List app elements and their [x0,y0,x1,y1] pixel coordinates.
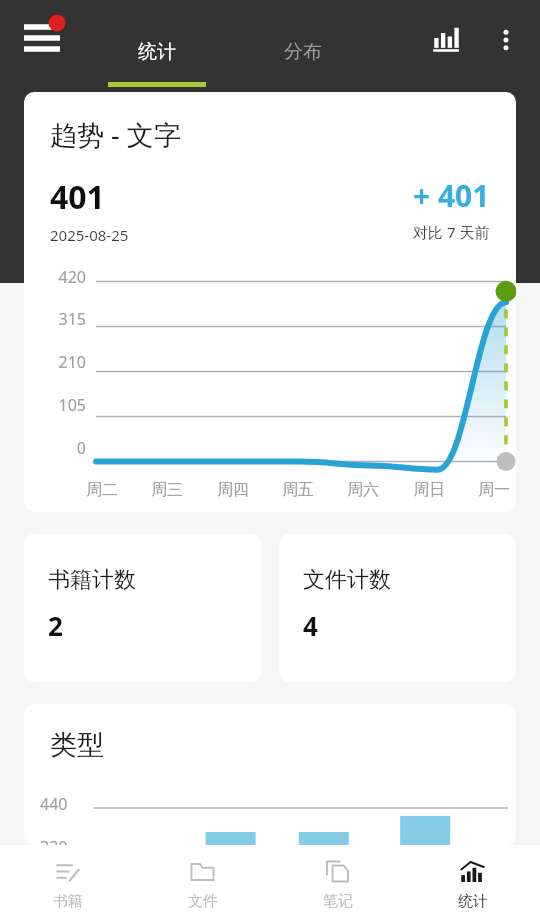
staticText: 分布 [284,40,322,64]
staticText: 对比 7 天前 [413,222,490,242]
staticText: 210 [24,351,86,373]
staticText: 周日 [413,480,445,500]
staticText: 2 [48,608,63,643]
staticText: 4 [303,608,318,643]
staticText: 周五 [282,480,314,500]
staticText: + 401 [413,175,490,216]
staticText: 105 [24,394,86,416]
button[interactable]: 趋势 - 文字 [24,92,516,512]
staticText: 文件计数 [303,566,391,594]
button[interactable]: 分布 [238,40,368,92]
staticText: 2025-08-25 [50,225,129,245]
staticText: 315 [24,308,86,330]
staticText: 周六 [347,480,379,500]
staticText: 书籍计数 [48,566,136,594]
button[interactable]: 书籍计数 [24,534,261,682]
staticText: 周二 [86,480,118,500]
staticText: 统计 [458,892,488,911]
button[interactable]: 统计 [92,40,222,92]
button[interactable]: Chart type [422,16,470,64]
button[interactable]: 笔记 [270,845,405,924]
staticText: 周一 [478,480,510,500]
staticText: 类型 [50,728,104,762]
button[interactable]: 文件计数 [279,534,516,682]
staticText: 0 [24,437,86,459]
button[interactable]: More options [482,16,530,64]
staticText: 趋势 - 文字 [50,116,181,153]
staticText: 440 [40,793,68,815]
staticText: 330 [40,836,68,845]
staticText: 420 [24,266,86,288]
staticText: 401 [50,175,105,219]
staticText: 书籍 [53,892,83,911]
button[interactable]: 类型 [24,704,516,845]
button[interactable]: 文件 [135,845,270,924]
staticText: 周三 [151,480,183,500]
button[interactable]: 书籍 [0,845,135,924]
staticText: 笔记 [323,892,353,911]
button[interactable]: 统计 [405,845,540,924]
staticText: 周四 [217,480,249,500]
button[interactable]: Navigation menu [14,12,70,68]
staticText: 统计 [138,40,176,64]
staticText: 文件 [188,892,218,911]
